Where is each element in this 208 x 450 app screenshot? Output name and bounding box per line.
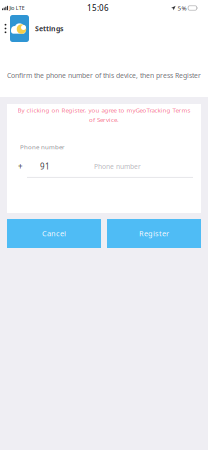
staticText: By clicking on Register, you agree to my… [17,106,190,114]
staticText: Register [139,228,169,239]
staticText: LTE [16,4,25,12]
staticText: 15:06 [87,3,109,13]
staticText: Jio [9,4,14,12]
staticText: Settings [35,24,63,33]
button[interactable]: Cancel [7,219,101,248]
staticText: + [18,161,23,172]
staticText: of Service. [89,115,119,124]
staticText: Phone number [20,143,65,151]
button[interactable]: Register [107,219,201,248]
staticText: Confirm the phone number of this device,… [7,71,201,80]
staticText: 91 [40,161,50,172]
staticText: Phone number [94,162,141,171]
staticText: Cancel [42,228,66,239]
button[interactable]: More options [1,15,10,42]
staticText: 5% [177,4,186,12]
